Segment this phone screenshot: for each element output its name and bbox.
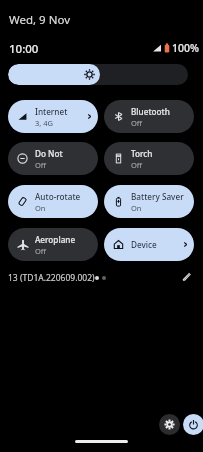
- button[interactable]: Settings: [159, 414, 180, 435]
- button[interactable]: Power: [183, 414, 203, 435]
- staticText: Battery Saver: [131, 191, 184, 202]
- button[interactable]: Bluetooth: [104, 100, 194, 133]
- staticText: Bluetooth: [131, 106, 170, 117]
- staticText: Off: [35, 246, 47, 256]
- staticText: 10:00: [9, 41, 39, 57]
- staticText: Internet: [35, 106, 68, 117]
- staticText: Aeroplane mode: [35, 234, 93, 245]
- staticText: Device controls: [131, 239, 182, 250]
- staticText: Off: [35, 160, 47, 170]
- button[interactable]: Do Not Disturb: [8, 142, 98, 175]
- staticText: On: [131, 203, 142, 213]
- button[interactable]: Brightness: [8, 64, 188, 85]
- button[interactable]: Battery Saver: [104, 185, 194, 218]
- staticText: Off: [131, 160, 143, 170]
- staticText: On: [35, 203, 46, 213]
- staticText: Wed, 9 Nov: [9, 12, 70, 28]
- button[interactable]: Edit tiles: [178, 268, 195, 285]
- staticText: 100%: [172, 41, 199, 55]
- button[interactable]: Aeroplane mode: [8, 228, 98, 261]
- staticText: Torch: [131, 148, 153, 159]
- staticText: Do Not Disturb: [35, 148, 93, 159]
- staticText: Off: [131, 118, 143, 128]
- button[interactable]: Device controls: [104, 228, 194, 261]
- staticText: 3, 4G: [35, 118, 53, 128]
- button[interactable]: Torch: [104, 142, 194, 175]
- button[interactable]: Auto-rotate: [8, 185, 98, 218]
- staticText: Auto-rotate: [35, 191, 81, 202]
- button[interactable]: Internet: [8, 100, 98, 133]
- staticText: 13 (TD1A.220609.002): [8, 272, 95, 284]
